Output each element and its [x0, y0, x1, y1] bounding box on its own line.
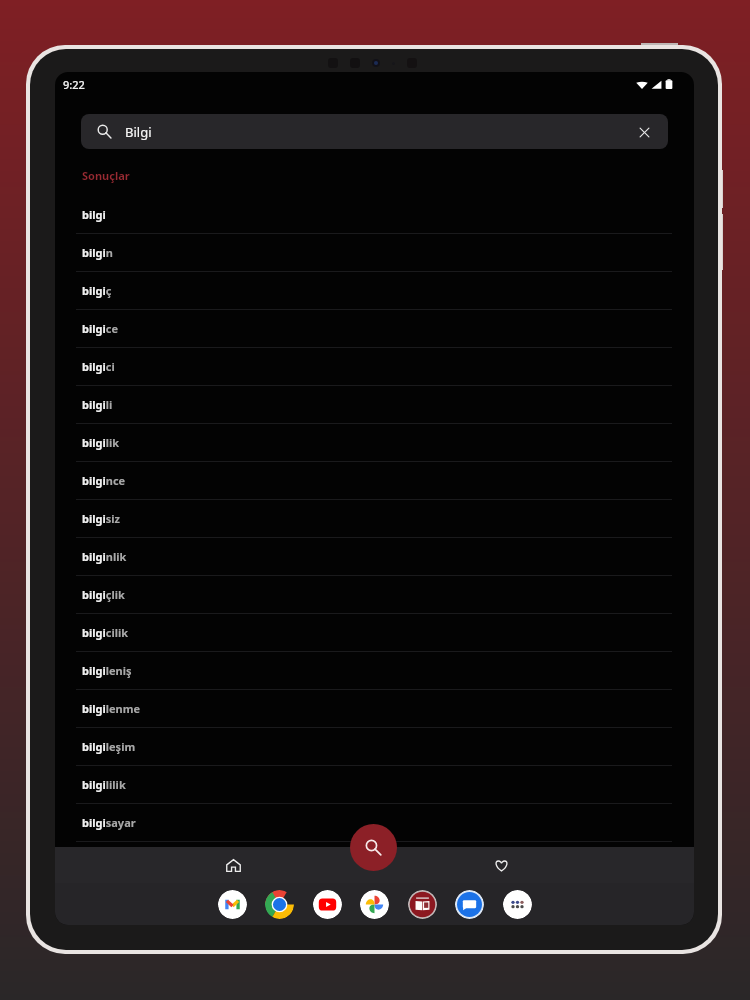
- button[interactable]: Search: [350, 824, 397, 871]
- staticText: bilgici: [82, 359, 115, 374]
- staticText: bilgileniş: [82, 663, 132, 678]
- staticText: bilgisayar: [82, 815, 136, 830]
- staticText: bilginlik: [82, 549, 127, 564]
- button[interactable]: bilgileniş: [55, 652, 694, 690]
- button[interactable]: Chrome: [265, 890, 294, 919]
- staticText: bilgili: [82, 397, 113, 412]
- staticText: bilgice: [82, 321, 119, 336]
- button[interactable]: bilgileşim: [55, 728, 694, 766]
- button[interactable]: bilgililik: [55, 766, 694, 804]
- button[interactable]: bilgili: [55, 386, 694, 424]
- button[interactable]: Favorites: [483, 847, 519, 883]
- button[interactable]: bilgi: [55, 196, 694, 234]
- button[interactable]: bilgici: [55, 348, 694, 386]
- staticText: bilgiçlik: [82, 587, 125, 602]
- button[interactable]: Home: [215, 847, 251, 883]
- staticText: Bilgi: [125, 123, 152, 141]
- button[interactable]: bilgicilik: [55, 614, 694, 652]
- staticText: bilgisiz: [82, 511, 120, 526]
- button[interactable]: bilgisayar: [55, 804, 694, 842]
- button[interactable]: bilgince: [55, 462, 694, 500]
- button[interactable]: bilgilenme: [55, 690, 694, 728]
- button[interactable]: All apps: [503, 890, 532, 919]
- button[interactable]: Gmail: [218, 890, 247, 919]
- button[interactable]: bilgice: [55, 310, 694, 348]
- button[interactable]: bilgiçlik: [55, 576, 694, 614]
- staticText: Sonuçlar: [82, 168, 130, 183]
- button[interactable]: bilgin: [55, 234, 694, 272]
- button[interactable]: Dictionary: [408, 890, 437, 919]
- staticText: 9:22: [63, 77, 85, 92]
- button[interactable]: Bilgi: [81, 114, 668, 149]
- button[interactable]: YouTube: [313, 890, 342, 919]
- staticText: bilgilenme: [82, 701, 141, 716]
- button[interactable]: Clear search: [628, 116, 660, 148]
- staticText: bilgililik: [82, 777, 126, 792]
- button[interactable]: bilgisiz: [55, 500, 694, 538]
- button[interactable]: bilginlik: [55, 538, 694, 576]
- button[interactable]: bilgiç: [55, 272, 694, 310]
- staticText: bilgilik: [82, 435, 120, 450]
- button[interactable]: bilgilik: [55, 424, 694, 462]
- staticText: bilgicilik: [82, 625, 129, 640]
- staticText: bilgince: [82, 473, 126, 488]
- staticText: bilgi: [82, 207, 106, 222]
- staticText: bilgin: [82, 245, 113, 260]
- button[interactable]: Google Photos: [360, 890, 389, 919]
- staticText: bilgileşim: [82, 739, 136, 754]
- staticText: bilgiç: [82, 283, 112, 298]
- button[interactable]: Messages: [455, 890, 484, 919]
